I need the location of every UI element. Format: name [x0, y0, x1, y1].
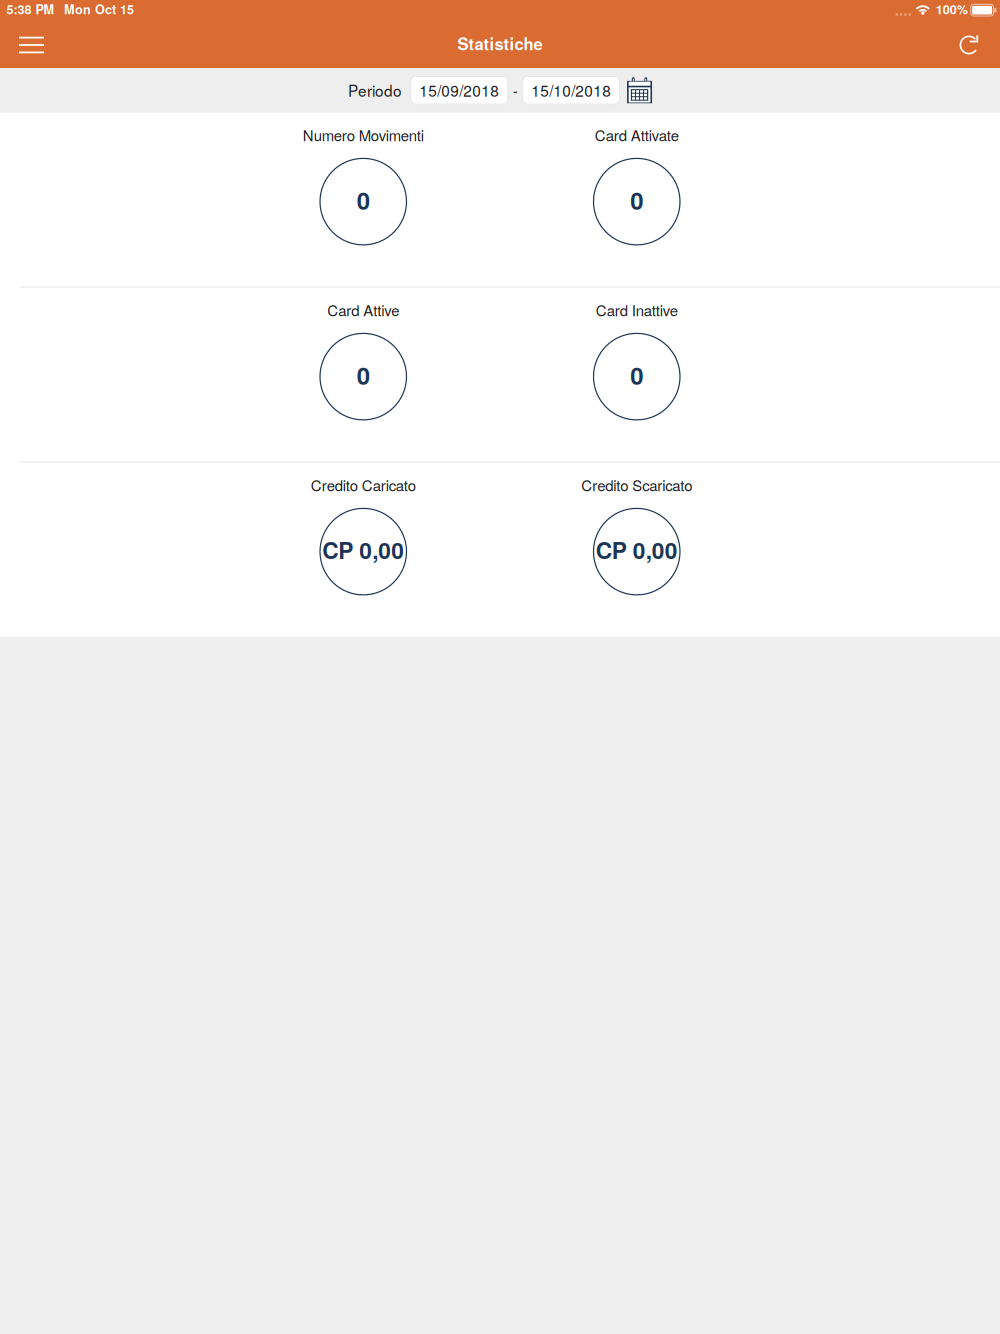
staticText: Periodo — [348, 79, 402, 101]
staticText: 0 — [357, 358, 370, 392]
staticText: Numero Movimenti — [303, 124, 424, 145]
staticText: CP 0,00 — [596, 534, 678, 566]
staticText: - — [513, 79, 518, 101]
button[interactable]: Menu — [8, 22, 54, 68]
button[interactable]: 15/09/2018 — [411, 76, 508, 104]
staticText: 5:38 PM — [6, 0, 54, 18]
staticText: 0 — [630, 358, 643, 392]
staticText: Card Inattive — [596, 299, 678, 320]
staticText: Credito Caricato — [311, 474, 416, 495]
staticText: 15/10/2018 — [531, 79, 611, 101]
staticText: 100% — [936, 0, 968, 18]
button[interactable]: Pick date range — [627, 77, 652, 103]
staticText: Mon Oct 15 — [64, 0, 134, 18]
staticText: Statistiche — [457, 32, 542, 55]
staticText: 0 — [357, 183, 370, 217]
button[interactable]: Refresh — [946, 22, 992, 68]
staticText: 0 — [630, 183, 643, 217]
staticText: 15/09/2018 — [419, 79, 499, 101]
staticText: Card Attive — [327, 299, 399, 320]
button[interactable]: 15/10/2018 — [523, 76, 620, 104]
staticText: CP 0,00 — [322, 534, 404, 566]
staticText: Card Attivate — [595, 124, 679, 145]
staticText: Credito Scaricato — [581, 474, 692, 495]
